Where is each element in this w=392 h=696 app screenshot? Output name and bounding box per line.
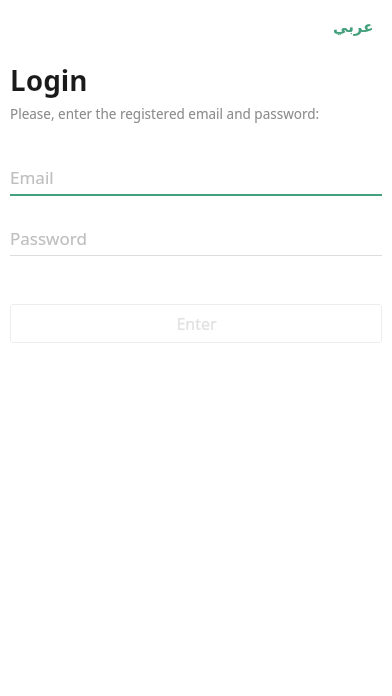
- staticText: Email: [10, 166, 54, 189]
- staticText: Enter: [176, 313, 217, 335]
- staticText: Please, enter the registered email and p…: [10, 105, 320, 123]
- staticText: Login: [10, 61, 88, 99]
- staticText: عربي: [333, 18, 374, 35]
- button[interactable]: عربي: [327, 14, 380, 39]
- button[interactable]: Enter: [10, 304, 382, 343]
- button[interactable]: Password: [10, 222, 382, 256]
- staticText: Password: [10, 227, 87, 250]
- button[interactable]: Email: [10, 161, 382, 196]
